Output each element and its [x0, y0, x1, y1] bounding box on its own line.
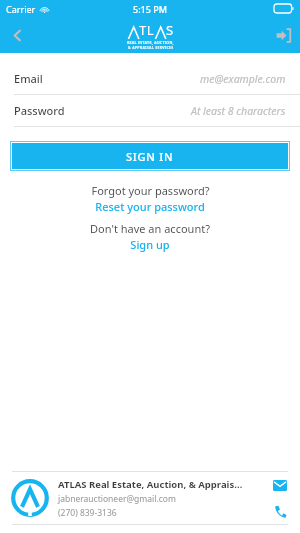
staticText: jabnerauctioneer@gmail.com	[58, 493, 176, 505]
staticText: Don't have an account?	[90, 221, 210, 236]
staticText: Forgot your password?	[91, 183, 210, 198]
staticText: SIGN IN	[126, 149, 174, 164]
staticText: (270) 839-3136	[58, 507, 117, 519]
button[interactable]: Password	[0, 95, 300, 127]
staticText: Reset your password	[95, 199, 205, 214]
button[interactable]: Back	[0, 18, 34, 52]
staticText: ATLAS Real Estate, Auction, & Apprais…	[58, 478, 243, 491]
staticText: S	[166, 21, 174, 39]
staticText: REAL ESTATE, AUCTION,	[127, 40, 174, 45]
staticText: Carrier	[6, 3, 36, 15]
staticText: me@example.com	[200, 72, 286, 86]
staticText: Sign up	[130, 237, 170, 252]
staticText: TL	[139, 21, 155, 39]
staticText: Email	[14, 71, 43, 86]
staticText: Password	[14, 103, 65, 118]
button[interactable]: Email	[270, 475, 290, 495]
staticText: 5:15 PM	[133, 3, 167, 15]
button[interactable]: SIGN IN	[12, 143, 288, 169]
button[interactable]: Sign in	[266, 18, 300, 52]
button[interactable]: Call	[270, 501, 290, 521]
staticText: & APPRAISAL SERVICES	[128, 45, 174, 50]
staticText: At least 8 characters	[191, 104, 286, 118]
button[interactable]: Sign up	[130, 237, 170, 252]
button[interactable]: Email	[0, 63, 300, 95]
button[interactable]: Reset your password	[95, 199, 205, 214]
